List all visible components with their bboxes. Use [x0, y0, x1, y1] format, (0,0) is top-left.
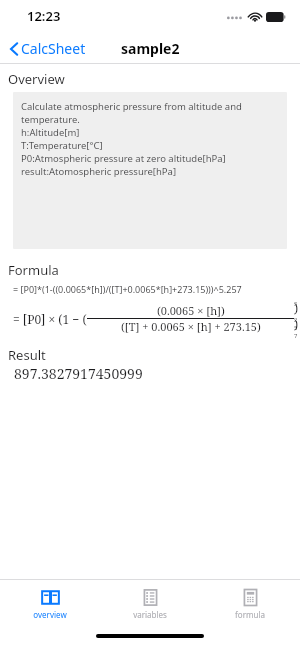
staticText: 12:23 — [27, 7, 61, 25]
staticText: Calculate atmospheric pressure from alti… — [21, 100, 242, 178]
staticText: ([T] + 0.0065 × [h] + 273.15) — [121, 319, 261, 334]
staticText: Overview — [8, 70, 65, 88]
staticText: Formula — [8, 261, 59, 279]
other: Variables tab — [141, 588, 160, 607]
staticText: = [P0] × (1 − ( — [13, 311, 87, 327]
button[interactable]: Variables tab — [100, 580, 200, 627]
button[interactable]: Overview tab — [0, 580, 100, 627]
staticText: overview — [33, 609, 67, 620]
staticText: sample2 — [121, 39, 180, 58]
staticText: 897.3827917450999 — [14, 364, 143, 383]
staticText: Result — [8, 346, 46, 364]
staticText: CalcSheet — [21, 39, 86, 58]
staticText: variables — [133, 609, 167, 620]
staticText: formula — [235, 609, 265, 620]
other: Overview tab — [41, 588, 60, 607]
button[interactable]: Formula tab — [200, 580, 300, 627]
button[interactable]: CalcSheet — [7, 35, 88, 62]
staticText: (0.0065 × [h]) — [157, 303, 225, 318]
staticText: = [P0]*(1-((0.0065*[h])/([T]+0.0065*[h]+… — [13, 283, 242, 295]
other: Formula tab — [241, 588, 260, 607]
